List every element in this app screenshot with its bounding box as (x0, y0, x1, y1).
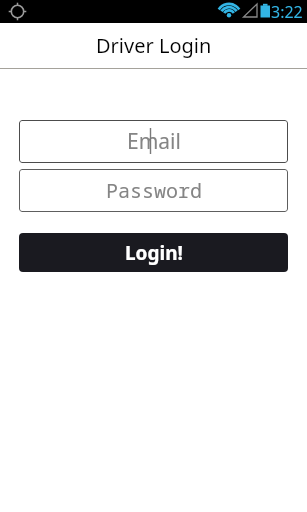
button[interactable]: Password (19, 169, 288, 212)
staticText: 3:22 (271, 1, 303, 23)
staticText: Password (106, 177, 202, 204)
staticText: Driver Login (96, 32, 212, 59)
button[interactable]: Email (19, 120, 288, 163)
button[interactable]: Login! (19, 233, 288, 272)
staticText: Login! (125, 240, 183, 266)
staticText: Email (127, 127, 181, 156)
